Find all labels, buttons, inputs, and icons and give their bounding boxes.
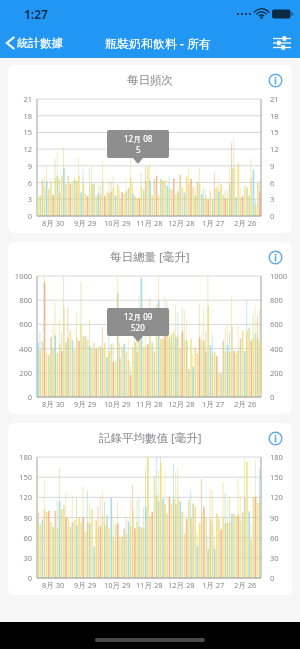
staticText: 1:27	[24, 6, 48, 22]
staticText: 11月 28	[136, 218, 163, 228]
staticText: 0	[8, 573, 32, 583]
staticText: 800	[270, 295, 292, 305]
staticText: 1000	[270, 271, 292, 281]
staticText: 3	[270, 194, 292, 204]
staticText: 12月 08	[124, 133, 153, 144]
button[interactable]: 統計數據	[0, 32, 69, 54]
staticText: 1月 27	[202, 580, 225, 590]
staticText: 12	[270, 144, 292, 154]
staticText: 21	[270, 94, 292, 104]
staticText: 0	[8, 392, 32, 402]
staticText: 10月 29	[104, 218, 131, 228]
staticText: 2月 26	[234, 218, 257, 228]
staticText: 9月 29	[74, 580, 97, 590]
staticText: 18	[270, 111, 292, 121]
staticText: 3	[8, 194, 32, 204]
staticText: 1月 27	[202, 399, 225, 409]
staticText: 800	[8, 295, 32, 305]
staticText: 12月 09	[124, 311, 153, 322]
staticText: 400	[270, 344, 292, 354]
button[interactable]: Information about 每日總量 [毫升]	[268, 250, 283, 265]
staticText: 統計數據	[17, 36, 63, 50]
staticText: 6	[8, 178, 32, 188]
staticText: 8月 30	[42, 218, 65, 228]
staticText: 600	[270, 319, 292, 329]
staticText: 10月 29	[104, 580, 131, 590]
staticText: 60	[270, 533, 292, 543]
staticText: 8月 30	[42, 399, 65, 409]
staticText: 9	[8, 161, 32, 171]
button[interactable]: Information about 每日頻次	[268, 73, 283, 88]
staticText: 12月 28	[168, 399, 195, 409]
staticText: 90	[8, 513, 32, 523]
staticText: 記錄平均數值 [毫升]	[99, 430, 202, 446]
staticText: 0	[270, 573, 292, 583]
staticText: 120	[8, 492, 32, 502]
staticText: 0	[8, 211, 32, 221]
button[interactable]: Information about 記錄平均數值 [毫升]	[268, 431, 283, 446]
staticText: 2月 26	[234, 580, 257, 590]
staticText: 8月 30	[42, 580, 65, 590]
staticText: 每日總量 [毫升]	[110, 249, 190, 265]
staticText: 11月 28	[136, 580, 163, 590]
staticText: 400	[8, 344, 32, 354]
staticText: 10月 29	[104, 399, 131, 409]
staticText: 200	[8, 368, 32, 378]
staticText: 60	[8, 533, 32, 543]
staticText: 120	[270, 492, 292, 502]
staticText: 0	[270, 392, 292, 402]
staticText: 12月 28	[168, 580, 195, 590]
staticText: 90	[270, 513, 292, 523]
staticText: 180	[8, 452, 32, 462]
staticText: 6	[270, 178, 292, 188]
staticText: 150	[270, 472, 292, 482]
staticText: 15	[270, 127, 292, 137]
staticText: 瓶裝奶和飲料 - 所有	[105, 35, 212, 51]
staticText: 1000	[8, 271, 32, 281]
staticText: 30	[8, 553, 32, 563]
staticText: 2月 26	[234, 399, 257, 409]
staticText: 150	[8, 472, 32, 482]
staticText: 12	[8, 144, 32, 154]
staticText: 5	[136, 144, 141, 155]
staticText: 9月 29	[74, 218, 97, 228]
staticText: 9	[270, 161, 292, 171]
staticText: 180	[270, 452, 292, 462]
staticText: 30	[270, 553, 292, 563]
staticText: 9月 29	[74, 399, 97, 409]
staticText: 200	[270, 368, 292, 378]
staticText: 15	[8, 127, 32, 137]
staticText: 1月 27	[202, 218, 225, 228]
staticText: 11月 28	[136, 399, 163, 409]
staticText: 600	[8, 319, 32, 329]
staticText: 0	[270, 211, 292, 221]
staticText: 520	[131, 322, 145, 333]
staticText: 18	[8, 111, 32, 121]
staticText: 21	[8, 94, 32, 104]
staticText: 每日頻次	[127, 73, 173, 87]
staticText: 12月 28	[168, 218, 195, 228]
button[interactable]: Filter settings	[272, 35, 292, 51]
